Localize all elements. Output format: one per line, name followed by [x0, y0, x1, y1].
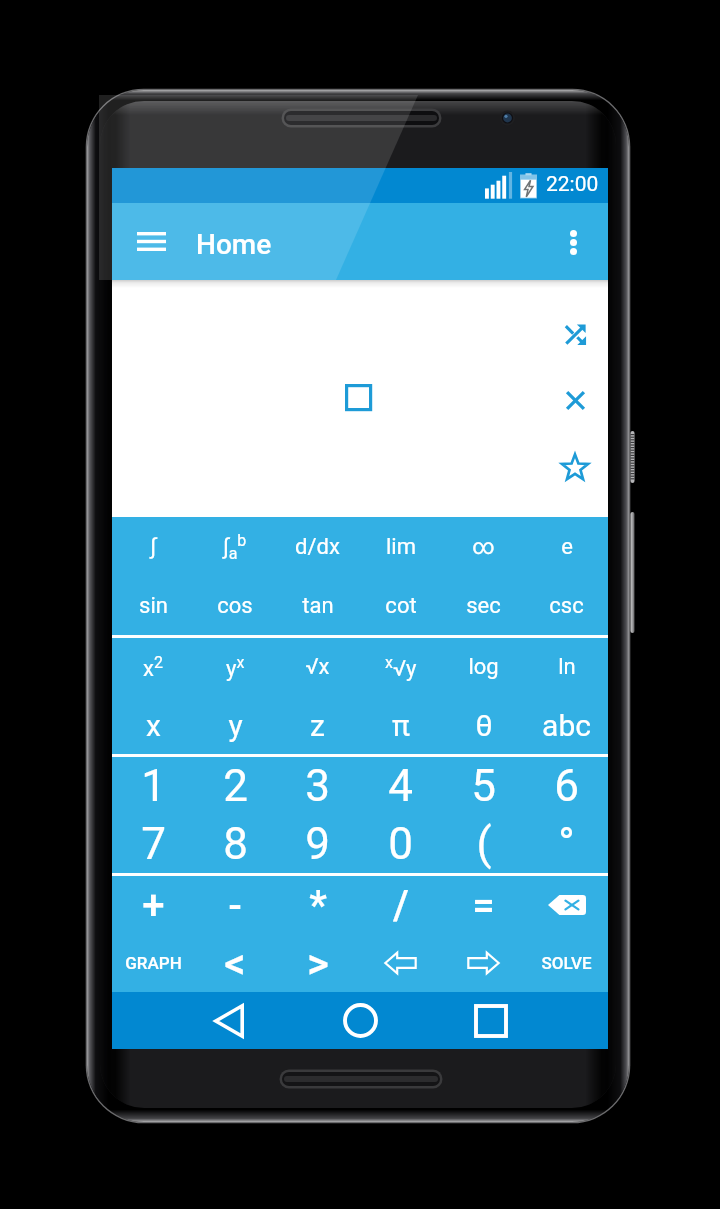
button[interactable]: 8	[194, 815, 276, 873]
button[interactable]: ∫	[112, 517, 194, 576]
button[interactable]: abc	[525, 696, 608, 754]
button[interactable]: Favorite	[543, 423, 607, 511]
button[interactable]: SOLVE	[525, 934, 608, 992]
button[interactable]: tan	[276, 576, 359, 635]
button[interactable]: yx	[194, 638, 276, 696]
button[interactable]: (	[442, 815, 525, 873]
other: Battery charging	[520, 173, 538, 199]
staticText: cos	[217, 593, 253, 619]
button[interactable]: ln	[525, 638, 608, 696]
button[interactable]: Move right	[442, 934, 525, 992]
button[interactable]: d/dx	[276, 517, 359, 576]
staticText: +	[142, 882, 165, 929]
button[interactable]: <	[194, 934, 276, 992]
button[interactable]: *	[276, 876, 359, 934]
button[interactable]: 3	[276, 757, 359, 815]
button[interactable]: x2	[112, 638, 194, 696]
staticText: yx	[226, 653, 245, 681]
staticText: ln	[558, 654, 576, 680]
button[interactable]: °	[525, 815, 608, 873]
staticText: >	[307, 939, 329, 988]
button[interactable]: θ	[442, 696, 525, 754]
staticText: -	[228, 882, 242, 929]
staticText: 9	[305, 818, 330, 870]
button[interactable]: 6	[525, 757, 608, 815]
other: Mobile signal	[485, 172, 512, 199]
button[interactable]: √x	[276, 638, 359, 696]
staticText: x2	[143, 653, 163, 681]
button[interactable]: >	[276, 934, 359, 992]
button[interactable]: π	[359, 696, 442, 754]
button[interactable]: sec	[442, 576, 525, 635]
staticText: =	[472, 882, 495, 929]
staticText: 8	[223, 818, 248, 870]
staticText: 4	[388, 760, 413, 812]
staticText: e	[561, 534, 573, 560]
button[interactable]: GRAPH	[112, 934, 194, 992]
button[interactable]: ∫ab	[194, 517, 276, 576]
staticText: /	[393, 882, 409, 929]
staticText: sin	[139, 593, 168, 619]
staticText: 5	[471, 760, 496, 812]
button[interactable]: 2	[194, 757, 276, 815]
button[interactable]: Back	[199, 992, 259, 1049]
staticText: csc	[549, 593, 584, 619]
staticText: sec	[466, 593, 501, 619]
staticText: x√y	[385, 653, 417, 681]
button[interactable]: Open navigation menu	[112, 208, 185, 274]
staticText: 22:00	[546, 172, 599, 197]
button[interactable]: =	[442, 876, 525, 934]
button[interactable]: x	[112, 696, 194, 754]
button[interactable]: 1	[112, 757, 194, 815]
button[interactable]: Home	[330, 992, 390, 1049]
staticText: °	[558, 818, 575, 870]
staticText: tan	[302, 593, 334, 619]
button[interactable]: cos	[194, 576, 276, 635]
staticText: y	[228, 708, 243, 743]
button[interactable]: Recent apps	[461, 992, 521, 1049]
button[interactable]: e	[525, 517, 608, 576]
staticText: log	[468, 654, 499, 680]
staticText: 0	[388, 818, 413, 870]
button[interactable]: 0	[359, 815, 442, 873]
staticText: ∞	[472, 534, 495, 560]
button[interactable]: 9	[276, 815, 359, 873]
staticText: π	[392, 708, 410, 743]
button[interactable]: sin	[112, 576, 194, 635]
button[interactable]: x√y	[359, 638, 442, 696]
staticText: GRAPH	[125, 953, 182, 973]
button[interactable]: Close	[543, 356, 607, 444]
staticText: 6	[554, 760, 579, 812]
staticText: 7	[141, 818, 166, 870]
button[interactable]: +	[112, 876, 194, 934]
button[interactable]: Backspace	[525, 876, 608, 934]
staticText: 3	[305, 760, 330, 812]
staticText: cot	[385, 593, 417, 619]
staticText: Home	[196, 228, 272, 261]
button[interactable]: 7	[112, 815, 194, 873]
staticText: <	[224, 939, 246, 988]
staticText: z	[310, 708, 325, 743]
other: Move right	[467, 951, 500, 975]
staticText: (	[476, 818, 492, 870]
button[interactable]: Swap	[543, 290, 607, 378]
staticText: √x	[305, 654, 330, 680]
button[interactable]: -	[194, 876, 276, 934]
button[interactable]: ∞	[442, 517, 525, 576]
staticText: 2	[223, 760, 248, 812]
button[interactable]: More options	[551, 220, 595, 264]
button[interactable]: 5	[442, 757, 525, 815]
button[interactable]: log	[442, 638, 525, 696]
button[interactable]: lim	[359, 517, 442, 576]
button[interactable]: csc	[525, 576, 608, 635]
button[interactable]: cot	[359, 576, 442, 635]
staticText: θ	[475, 708, 493, 743]
staticText: abc	[542, 708, 591, 743]
button[interactable]: z	[276, 696, 359, 754]
staticText: SOLVE	[541, 953, 592, 973]
button[interactable]: y	[194, 696, 276, 754]
other: Move left	[384, 951, 417, 975]
button[interactable]: /	[359, 876, 442, 934]
button[interactable]: Move left	[359, 934, 442, 992]
button[interactable]: 4	[359, 757, 442, 815]
